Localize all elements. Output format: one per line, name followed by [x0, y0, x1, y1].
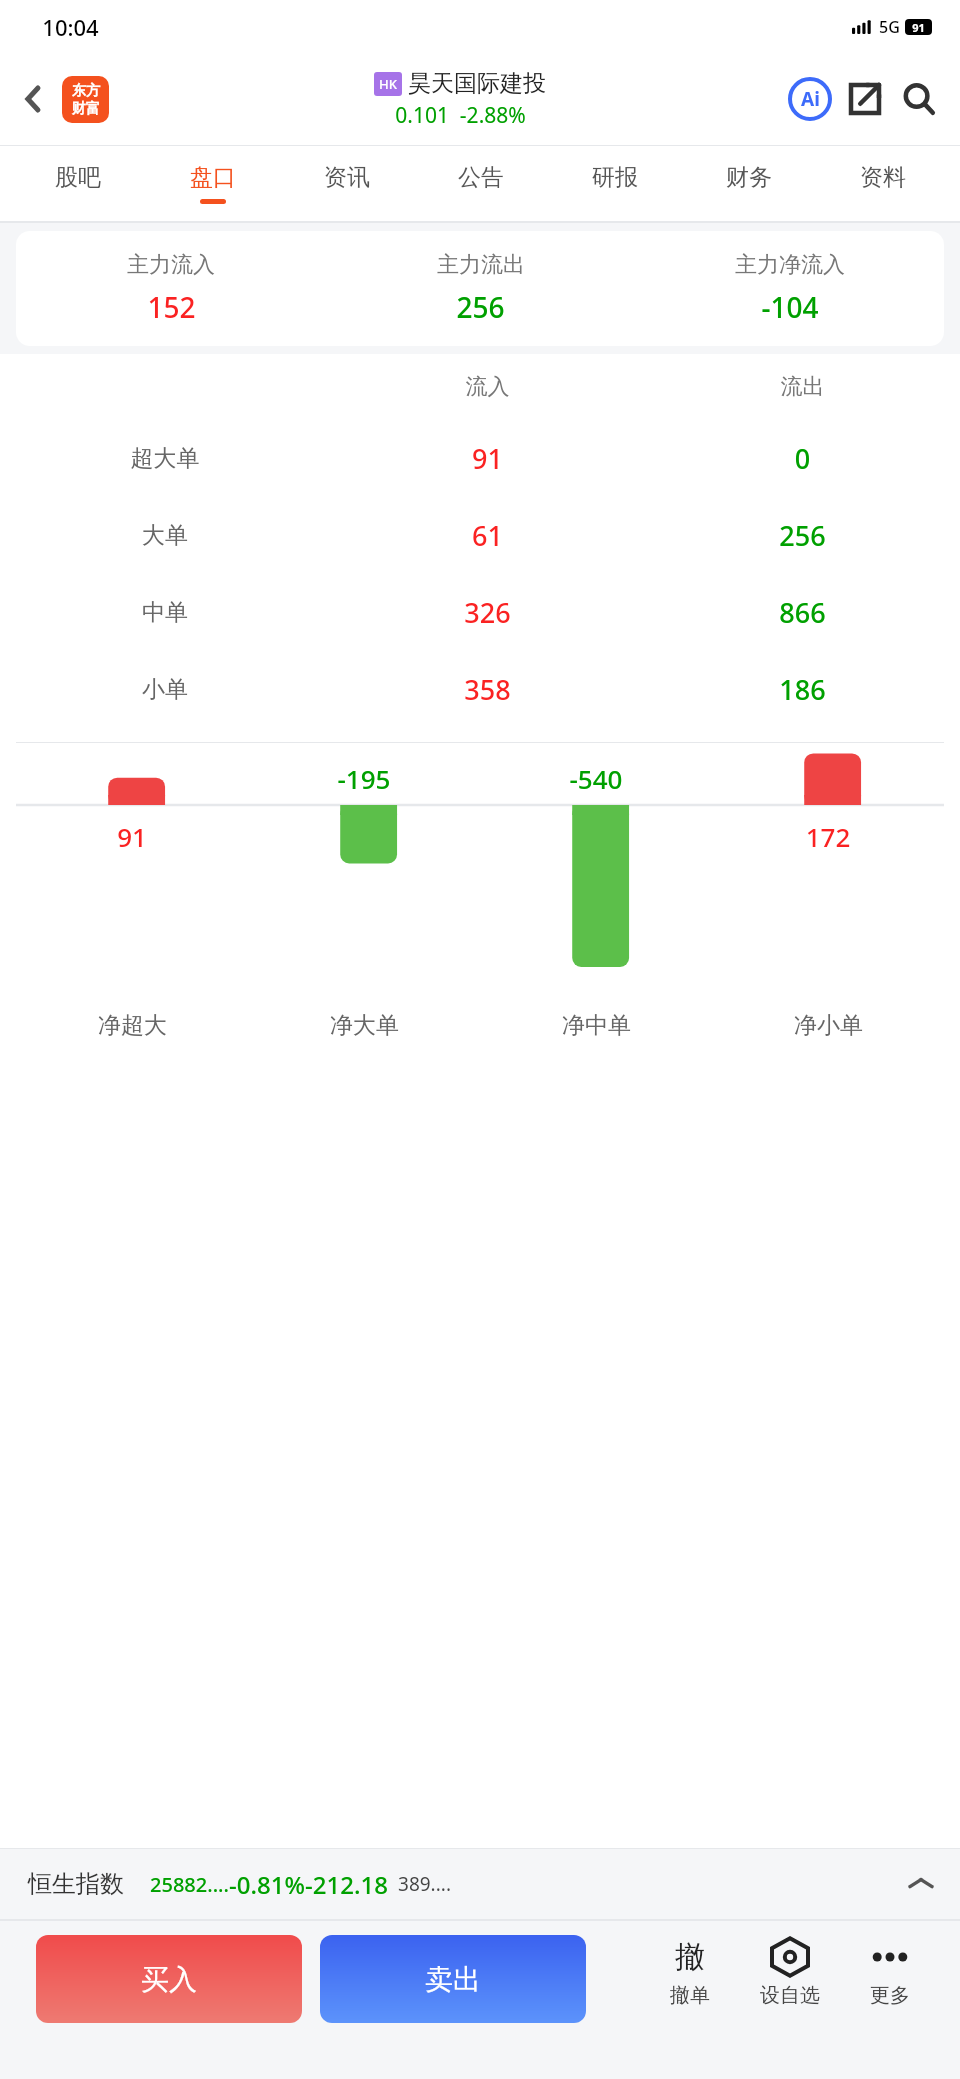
staticText: HK	[379, 75, 397, 93]
staticText: 设自选	[760, 1983, 820, 2008]
staticText: 61	[330, 517, 645, 554]
staticText: 0.101 -2.88%	[395, 101, 526, 130]
staticText: 撤	[675, 1938, 705, 1976]
staticText: 净小单	[794, 1011, 863, 1040]
staticText: 大单	[0, 521, 330, 550]
button[interactable]: 恒生指数	[28, 1849, 932, 1919]
button[interactable]: Back	[12, 77, 56, 121]
staticText: Ai	[801, 86, 820, 112]
button[interactable]: 资料	[816, 146, 950, 221]
staticText: 主力净流入	[735, 251, 845, 279]
button[interactable]: 净小单	[712, 1011, 944, 1040]
staticText: 172	[712, 819, 944, 854]
staticText: 91	[16, 819, 248, 854]
staticText: 0	[645, 440, 960, 477]
staticText: 卖出	[425, 1962, 481, 1997]
staticText: 256	[645, 517, 960, 554]
staticText: 主力流入	[127, 251, 215, 279]
staticText: 358	[330, 671, 645, 708]
staticText: 股吧	[55, 163, 101, 192]
staticText: 91	[912, 20, 925, 35]
button[interactable]: 公告	[414, 146, 548, 221]
staticText: -0.81%	[229, 1868, 305, 1901]
staticText: 186	[645, 671, 960, 708]
staticText: 研报	[592, 163, 638, 192]
button[interactable]: Search	[892, 72, 946, 126]
staticText: -212.18	[305, 1868, 388, 1901]
button[interactable]: 资讯	[280, 146, 414, 221]
button[interactable]: 股吧	[10, 146, 145, 221]
button[interactable]: 小单	[0, 651, 960, 728]
staticText: 25882....	[150, 1871, 229, 1898]
staticText: 91	[330, 440, 645, 477]
button[interactable]: 研报	[548, 146, 682, 221]
staticText: 326	[330, 594, 645, 631]
staticText: 东方	[72, 82, 100, 100]
staticText: 中单	[0, 598, 330, 627]
staticText: 5G	[879, 16, 900, 38]
staticText: 净超大	[98, 1011, 167, 1040]
button[interactable]: 净中单	[480, 1011, 712, 1040]
staticText: -195	[248, 761, 480, 796]
staticText: 资料	[860, 163, 906, 192]
staticText: 净大单	[330, 1011, 399, 1040]
button[interactable]: 大单	[0, 497, 960, 574]
staticText: 公告	[458, 163, 504, 192]
staticText: 恒生指数	[28, 1869, 124, 1899]
staticText: 更多	[870, 1983, 910, 2008]
button[interactable]: Share	[838, 72, 892, 126]
button[interactable]: 设自选	[744, 1935, 836, 2008]
button[interactable]: 中单	[0, 574, 960, 651]
staticText: 流出	[645, 373, 960, 401]
staticText: 撤单	[670, 1983, 710, 2008]
button[interactable]: East Money	[62, 76, 109, 123]
staticText: -104	[761, 288, 819, 326]
staticText: 152	[147, 288, 196, 326]
staticText: 超大单	[0, 444, 330, 473]
staticText: 昊天国际建投	[408, 69, 546, 98]
staticText: 866	[645, 594, 960, 631]
staticText: 资讯	[324, 163, 370, 192]
button[interactable]: 买入	[36, 1935, 302, 2023]
staticText: 小单	[0, 675, 330, 704]
button[interactable]: 超大单	[0, 420, 960, 497]
button[interactable]: 撤	[644, 1935, 736, 2008]
button[interactable]: AI	[782, 71, 838, 127]
staticText: 财务	[726, 163, 772, 192]
staticText: -540	[480, 761, 712, 796]
staticText: 财富	[72, 100, 100, 118]
button[interactable]: 财务	[682, 146, 816, 221]
staticText: 389....	[398, 1871, 451, 1897]
button[interactable]: 卖出	[320, 1935, 586, 2023]
button[interactable]: 净大单	[248, 1011, 480, 1040]
button[interactable]: 净超大	[16, 1011, 248, 1040]
staticText: 10:04	[42, 12, 99, 42]
staticText: 主力流出	[437, 251, 525, 279]
staticText: 盘口	[190, 163, 236, 192]
staticText: 流入	[330, 373, 645, 401]
staticText: 256	[456, 288, 505, 326]
staticText: 买入	[141, 1962, 197, 1997]
staticText: 净中单	[562, 1011, 631, 1040]
button[interactable]: 盘口	[145, 146, 280, 221]
button[interactable]: 主力流入	[16, 251, 944, 326]
button[interactable]: 更多	[844, 1935, 936, 2008]
